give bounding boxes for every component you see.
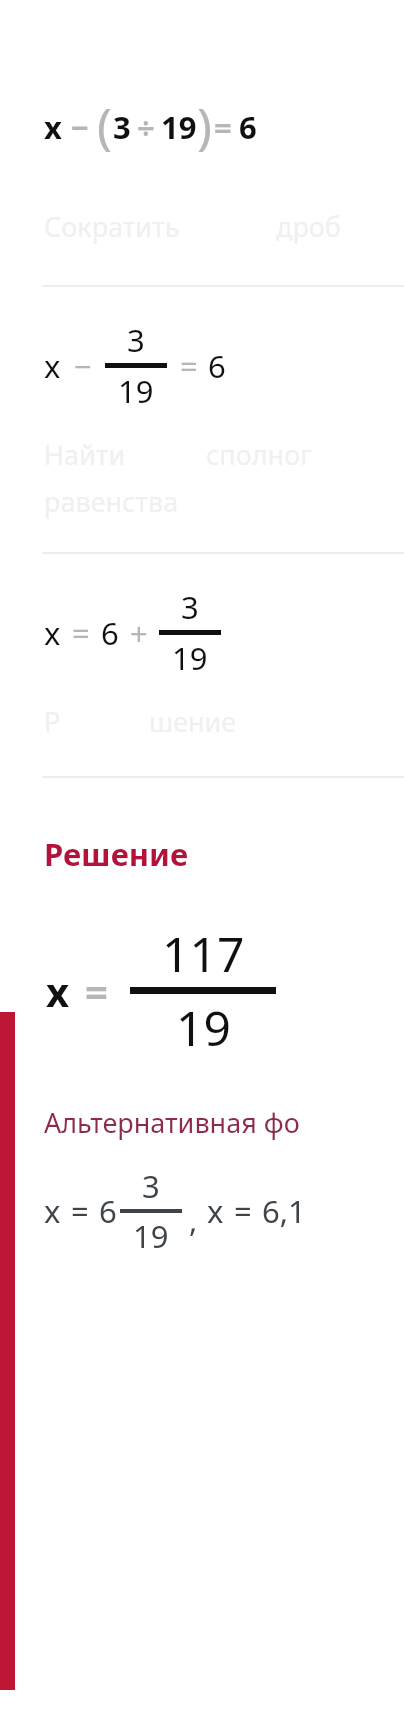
staticText: 19: [133, 1215, 169, 1257]
staticText: (: [97, 91, 112, 159]
button[interactable]: Решение: [0, 833, 404, 875]
staticText: x: [207, 1190, 224, 1232]
staticText: x: [44, 612, 61, 654]
staticText: 6: [208, 345, 226, 387]
staticText: Альтернативная фо: [44, 1104, 300, 1141]
staticText: дроб: [276, 208, 341, 245]
staticText: 19: [118, 370, 154, 412]
staticText: 19: [172, 637, 208, 679]
staticText: 3: [181, 586, 199, 628]
staticText: 6,1: [262, 1190, 306, 1232]
staticText: Решение: [44, 833, 189, 875]
staticText: 3: [142, 1165, 160, 1207]
staticText: сполног: [206, 436, 313, 473]
staticText: 19: [176, 995, 231, 1060]
staticText: =: [72, 612, 90, 654]
button[interactable]: x: [0, 93, 404, 161]
staticText: Р: [44, 703, 61, 740]
staticText: x: [44, 1190, 61, 1232]
staticText: =: [85, 964, 108, 1018]
staticText: =: [180, 345, 198, 387]
staticText: 3: [113, 106, 131, 148]
staticText: 117: [162, 921, 245, 986]
staticText: Найти: [44, 436, 126, 473]
staticText: равенства: [44, 483, 179, 520]
staticText: x: [46, 964, 70, 1018]
staticText: −: [71, 106, 90, 148]
staticText: 6: [99, 1190, 117, 1232]
staticText: =: [214, 106, 232, 148]
staticText: −: [74, 345, 92, 387]
staticText: +: [130, 612, 148, 654]
staticText: 19: [161, 106, 197, 148]
staticText: ÷: [137, 106, 155, 148]
staticText: x: [44, 345, 61, 387]
staticText: Сократить: [44, 208, 180, 245]
staticText: 3: [127, 319, 145, 361]
staticText: 6: [101, 612, 119, 654]
staticText: шение: [149, 703, 237, 740]
button[interactable]: Альтернативная фо: [0, 1104, 404, 1141]
staticText: x: [44, 106, 62, 148]
staticText: ,: [189, 1199, 198, 1241]
button[interactable]: x: [0, 319, 404, 412]
button[interactable]: x: [0, 586, 404, 679]
staticText: =: [71, 1190, 89, 1232]
staticText: ): [197, 91, 212, 159]
staticText: =: [234, 1190, 252, 1232]
staticText: 6: [239, 106, 257, 148]
